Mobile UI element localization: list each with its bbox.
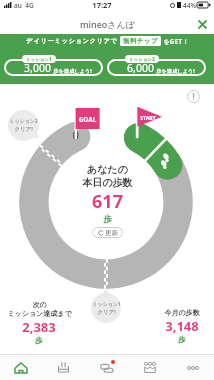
button[interactable]: 更新	[92, 227, 123, 238]
staticText: 更新	[105, 229, 118, 237]
staticText: 歩を達成しよう!	[53, 67, 92, 74]
staticText: 3,000	[24, 61, 51, 75]
button[interactable]: Chat	[85, 355, 128, 380]
staticText: デイリーミッションクリアで	[26, 37, 118, 45]
button[interactable]: 6,000	[107, 55, 206, 76]
staticText: クリア!	[14, 125, 33, 133]
button[interactable]: 3,000	[4, 55, 103, 76]
staticText: 本日の歩数	[82, 176, 133, 189]
staticText: ミッション1	[26, 56, 52, 62]
staticText: 17:27	[92, 0, 112, 10]
staticText: ミッション2	[129, 56, 155, 62]
staticText: au	[14, 1, 22, 10]
button[interactable]: Gacha	[128, 355, 171, 380]
staticText: 無料チップ	[123, 37, 158, 45]
button[interactable]: Data	[42, 355, 85, 380]
button[interactable]: More	[171, 355, 214, 380]
button[interactable]: Home	[0, 355, 42, 380]
staticText: 次の	[32, 300, 47, 309]
staticText: クリア!	[97, 308, 116, 316]
staticText: 歩	[35, 336, 43, 345]
staticText: 歩を達成しよう!	[156, 67, 195, 74]
staticText: 2,383	[22, 318, 56, 336]
staticText: 4G	[25, 1, 34, 10]
staticText: をGET！	[163, 37, 189, 45]
staticText: 617	[92, 189, 123, 214]
staticText: ミッション2	[9, 118, 38, 125]
staticText: ミッション1	[92, 301, 121, 308]
staticText: 6,000	[127, 61, 154, 75]
staticText: mineoさんぽ	[80, 18, 135, 30]
staticText: 3,148	[165, 317, 199, 335]
staticText: あなたの	[87, 163, 128, 176]
staticText: 44%	[183, 1, 196, 10]
staticText: ミッション達成まで	[7, 309, 72, 318]
staticText: 今月の歩数	[164, 308, 200, 317]
staticText: 歩	[178, 335, 186, 344]
button[interactable]: Information	[185, 88, 201, 104]
staticText: START	[139, 114, 157, 121]
staticText: GOAL	[76, 115, 99, 124]
staticText: 歩	[103, 214, 112, 225]
button[interactable]: Close	[194, 16, 210, 32]
